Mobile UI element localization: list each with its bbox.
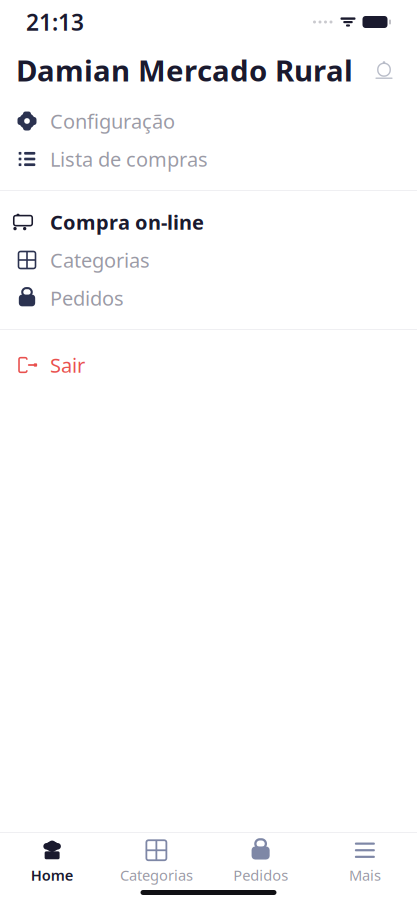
- staticText: Lista de compras: [50, 146, 208, 172]
- button[interactable]: Pedidos: [208, 833, 313, 891]
- button[interactable]: Mais: [313, 833, 417, 891]
- staticText: Categorias: [50, 247, 150, 273]
- button[interactable]: Configuração: [0, 102, 417, 140]
- staticText: Sair: [50, 352, 85, 378]
- button[interactable]: Home: [0, 833, 104, 891]
- button[interactable]: Notificações: [367, 53, 401, 87]
- button[interactable]: Sair: [0, 346, 417, 384]
- button[interactable]: Lista de compras: [0, 140, 417, 178]
- button[interactable]: Compra on-line: [0, 203, 417, 241]
- staticText: Categorias: [120, 865, 193, 885]
- staticText: Configuração: [50, 108, 175, 134]
- staticText: Damian Mercado Rural: [16, 50, 353, 89]
- button[interactable]: Categorias: [104, 833, 208, 891]
- staticText: Pedidos: [233, 865, 288, 885]
- staticText: Compra on-line: [50, 209, 204, 235]
- button[interactable]: Pedidos: [0, 279, 417, 317]
- button[interactable]: Categorias: [0, 241, 417, 279]
- staticText: 21:13: [26, 7, 84, 37]
- staticText: Mais: [349, 865, 381, 885]
- staticText: Pedidos: [50, 285, 124, 311]
- staticText: Home: [31, 865, 74, 885]
